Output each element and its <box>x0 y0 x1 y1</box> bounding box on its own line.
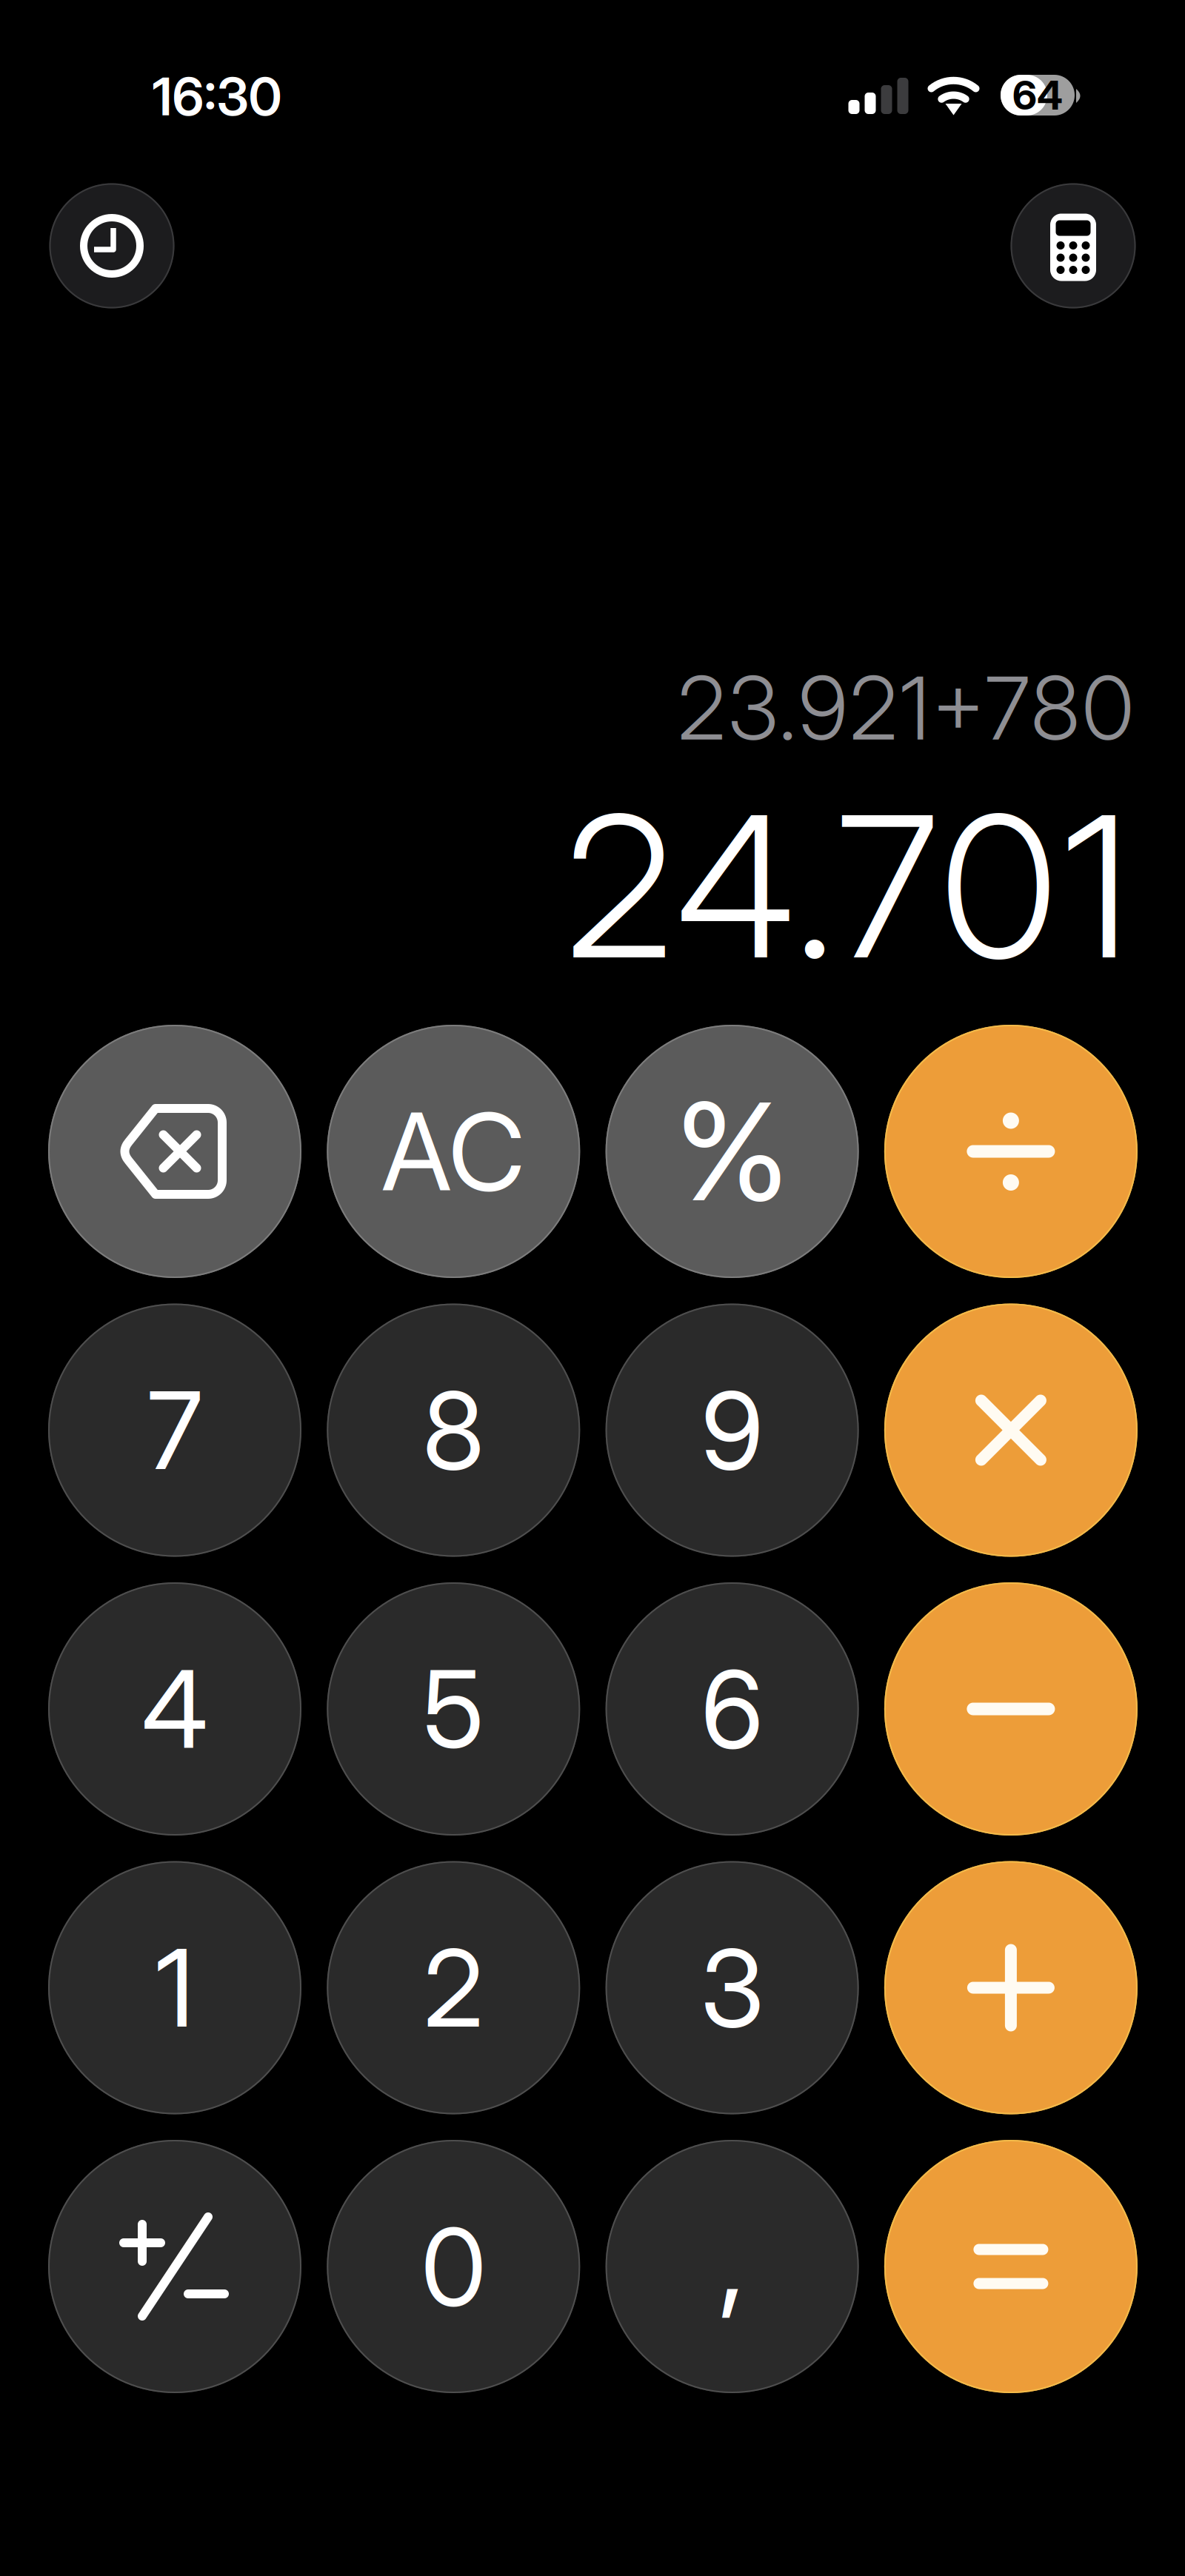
button[interactable]: Add <box>884 1861 1138 2114</box>
button[interactable]: % <box>606 1025 859 1278</box>
staticText: 9 <box>701 1366 763 1495</box>
staticText: AC <box>382 1087 525 1216</box>
button[interactable]: 9 <box>606 1304 859 1557</box>
staticText: 3 <box>700 1923 764 2052</box>
button[interactable]: , <box>606 2140 859 2393</box>
button[interactable]: Calculator mode <box>1011 183 1136 308</box>
staticText: 7 <box>147 1366 202 1495</box>
staticText: % <box>676 1070 789 1233</box>
button[interactable]: Subtract <box>884 1582 1138 1836</box>
button[interactable]: Equals <box>884 2140 1138 2393</box>
staticText: 1 <box>156 1923 194 2052</box>
button[interactable]: 5 <box>327 1582 580 1836</box>
button[interactable]: 0 <box>327 2140 580 2393</box>
staticText: , <box>719 2185 746 2330</box>
button[interactable]: Delete <box>48 1025 301 1278</box>
staticText: 8 <box>422 1366 485 1495</box>
button[interactable]: 8 <box>327 1304 580 1557</box>
button[interactable]: 4 <box>48 1582 301 1836</box>
button[interactable]: History <box>49 183 174 308</box>
staticText: 64 <box>1012 71 1063 119</box>
staticText: 5 <box>423 1644 484 1773</box>
button[interactable]: 3 <box>606 1861 859 2114</box>
button[interactable]: 7 <box>48 1304 301 1557</box>
button[interactable]: Multiply <box>884 1304 1138 1557</box>
staticText: 24.701 <box>565 768 1130 1005</box>
staticText: 4 <box>142 1644 208 1773</box>
staticText: 16:30 <box>152 65 282 128</box>
staticText: 6 <box>701 1644 763 1773</box>
staticText: 0 <box>421 2202 486 2331</box>
button[interactable]: 2 <box>327 1861 580 2114</box>
button[interactable]: Divide <box>884 1025 1138 1278</box>
button[interactable]: Plus minus <box>48 2140 301 2393</box>
button[interactable]: AC <box>327 1025 580 1278</box>
staticText: 23.921+780 <box>678 655 1134 760</box>
button[interactable]: 1 <box>48 1861 301 2114</box>
staticText: 2 <box>423 1923 483 2052</box>
button[interactable]: 6 <box>606 1582 859 1836</box>
